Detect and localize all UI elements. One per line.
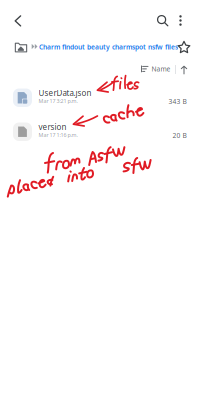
staticText: UserData.json: [38, 87, 91, 98]
staticText: Mar 17 3:21 p.m.: [38, 97, 77, 105]
button[interactable]: Search: [150, 8, 174, 32]
button[interactable]: Charm findout beauty charmspot nsfw file…: [39, 40, 179, 54]
button[interactable]: UserData.json: [0, 83, 200, 113]
button[interactable]: More options: [169, 8, 191, 32]
staticText: 343 B: [168, 97, 186, 106]
button[interactable]: version: [0, 117, 200, 147]
button[interactable]: Name: [141, 63, 171, 75]
button[interactable]: Back: [5, 8, 31, 34]
staticText: version: [38, 121, 66, 132]
staticText: 20 B: [172, 131, 186, 140]
staticText: Name: [152, 65, 171, 73]
staticText: Charm findout beauty charmspot nsfw file…: [39, 43, 178, 51]
button[interactable]: Home folder: [11, 38, 31, 56]
staticText: Mar 17 1:16 p.m.: [38, 131, 77, 139]
button[interactable]: Favourite: [176, 39, 192, 55]
button[interactable]: Sort ascending: [178, 64, 190, 76]
